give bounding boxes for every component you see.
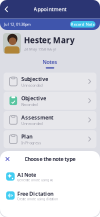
staticText: Record Note <box>71 22 95 27</box>
staticText: Create a note using dictation <box>17 197 58 201</box>
staticText: In Progress <box>21 140 41 145</box>
staticText: Assessment <box>21 114 53 121</box>
staticText: 24 May 1958 (66 y) <box>24 46 56 52</box>
staticText: Unrecorded <box>21 82 42 88</box>
staticText: Subjective <box>21 75 48 82</box>
button[interactable]: AI Note <box>0 167 100 186</box>
staticText: Appointment <box>33 6 66 13</box>
button[interactable]: Assessment <box>4 111 96 129</box>
staticText: Objective <box>21 95 46 102</box>
staticText: Hester, Mary <box>24 35 75 45</box>
staticText: Plan <box>21 133 32 140</box>
button[interactable]: Notes <box>37 58 63 69</box>
button[interactable]: Close <box>1 153 13 165</box>
staticText: Recorded <box>21 102 37 107</box>
staticText: Free Dictation <box>17 190 53 197</box>
staticText: Generate a note using AI <box>17 178 53 182</box>
button[interactable]: Objective <box>4 92 96 110</box>
button[interactable]: Record Note <box>70 21 95 28</box>
staticText: Notes <box>42 58 57 66</box>
button[interactable]: Back <box>1 3 12 15</box>
staticText: Unrecorded <box>21 121 42 126</box>
button[interactable]: Plan <box>4 130 96 148</box>
staticText: AI Note <box>17 171 36 178</box>
staticText: Choose the note type <box>24 155 75 163</box>
button[interactable]: Free Dictation <box>0 186 100 205</box>
staticText: Jul 12, 01:30pm <box>4 22 31 27</box>
button[interactable]: Subjective <box>4 73 96 91</box>
